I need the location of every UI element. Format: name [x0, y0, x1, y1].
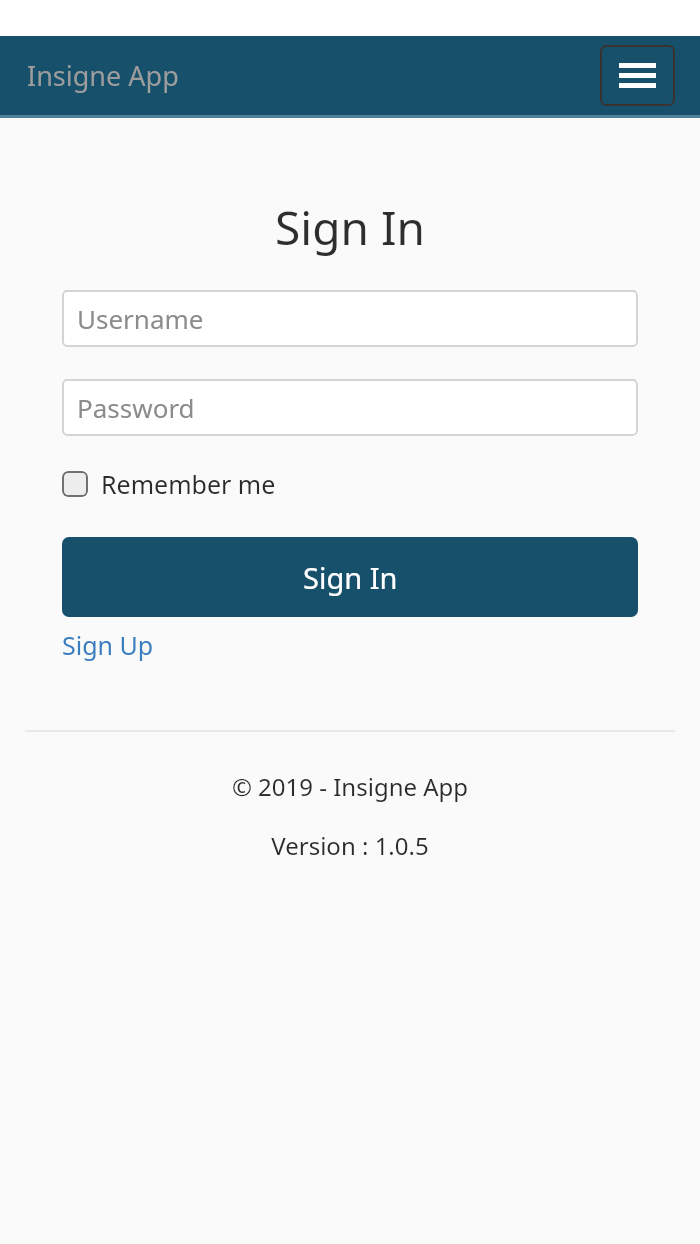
staticText: Password	[77, 390, 195, 425]
button[interactable]: Sign In	[62, 537, 638, 617]
staticText: Version : 1.0.5	[0, 829, 700, 862]
button[interactable]: Password	[62, 379, 638, 436]
staticText: Remember me	[101, 467, 276, 501]
staticText: Sign Up	[62, 628, 154, 662]
button[interactable]: Insigne App	[27, 57, 179, 94]
staticText: Sign In	[0, 196, 700, 259]
staticText: Username	[77, 301, 204, 336]
button[interactable]: Username	[62, 290, 638, 347]
button[interactable]: Toggle navigation menu	[600, 45, 675, 106]
button[interactable]: Remember me	[62, 467, 276, 501]
staticText: Sign In	[303, 558, 398, 597]
staticText: © 2019 - Insigne App	[0, 770, 700, 803]
button[interactable]: Sign Up	[62, 628, 154, 662]
